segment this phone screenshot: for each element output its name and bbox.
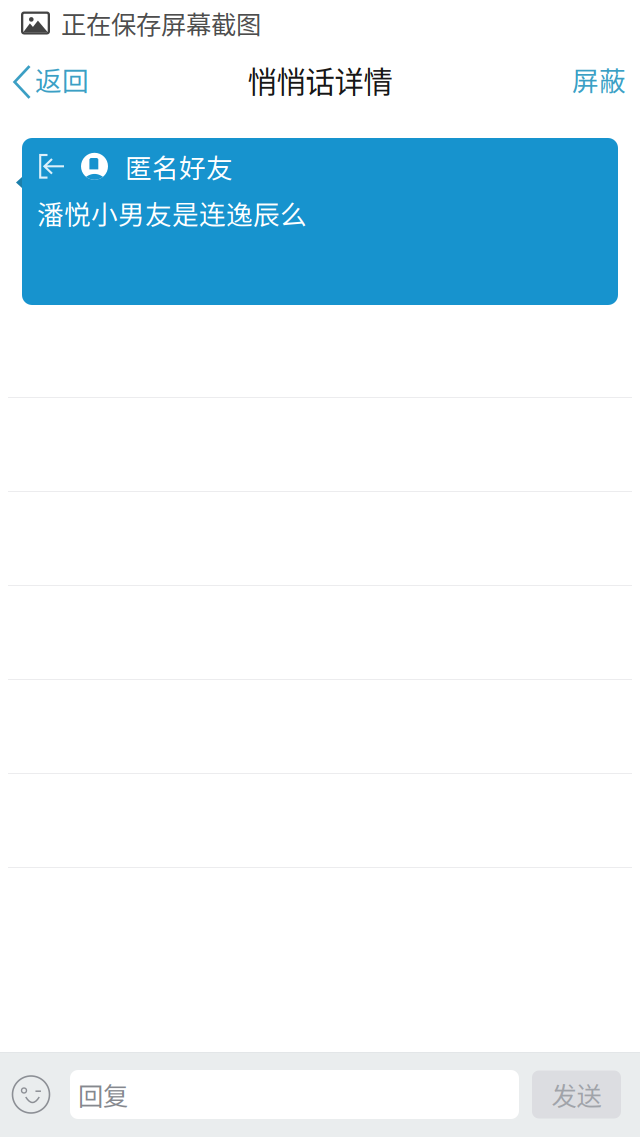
- staticText: 匿名好友: [125, 147, 233, 186]
- staticText: 正在保存屏幕截图: [61, 5, 261, 41]
- staticText: 潘悦小男友是连逸辰么: [37, 194, 307, 232]
- button[interactable]: 发送: [519, 1052, 640, 1137]
- button[interactable]: 屏蔽: [556, 46, 640, 112]
- staticText: 返回: [35, 60, 89, 98]
- staticText: 悄悄话详情: [247, 59, 392, 101]
- staticText: 屏蔽: [572, 60, 626, 98]
- button[interactable]: 表情: [0, 1052, 70, 1137]
- staticText: 回复: [78, 1076, 128, 1113]
- button[interactable]: 返回: [0, 46, 105, 112]
- button[interactable]: 回复: [70, 1070, 519, 1119]
- staticText: 发送: [551, 1076, 601, 1113]
